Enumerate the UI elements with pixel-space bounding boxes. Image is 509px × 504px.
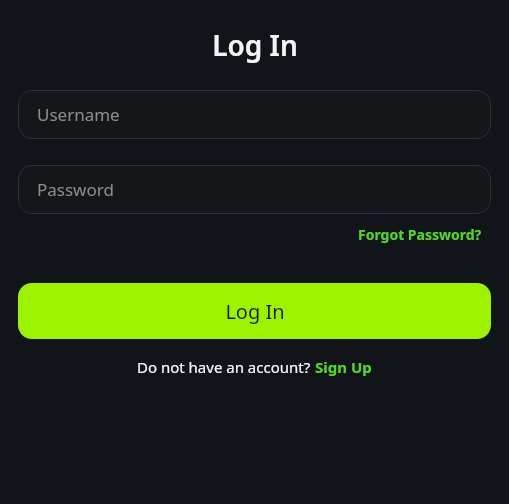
button[interactable]: Log In	[18, 283, 491, 339]
staticText: Sign Up	[315, 357, 372, 377]
staticText: Log In	[212, 26, 298, 64]
button[interactable]: Username	[18, 90, 491, 139]
button[interactable]: Password	[18, 165, 491, 214]
button[interactable]: Forgot Password?	[349, 222, 491, 247]
staticText: Username	[37, 103, 120, 126]
staticText: Do not have an account?	[137, 357, 315, 377]
button[interactable]: Sign Up	[315, 357, 372, 377]
staticText: Password	[37, 178, 114, 201]
staticText: Forgot Password?	[358, 225, 482, 244]
staticText: Log In	[225, 298, 285, 325]
